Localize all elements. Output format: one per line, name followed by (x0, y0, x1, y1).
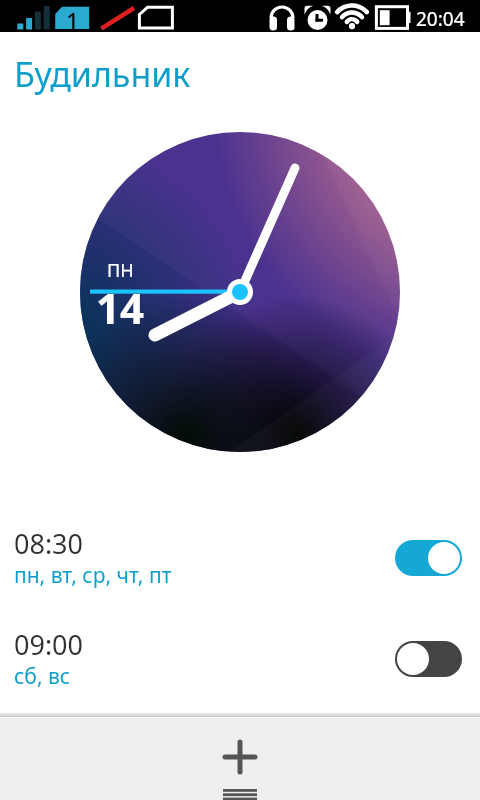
staticText: 1 (66, 5, 80, 36)
staticText: 08:30 (14, 525, 84, 562)
button[interactable]: 08:30 (0, 515, 480, 601)
staticText: 20:04 (416, 6, 465, 32)
staticText: 14 (96, 279, 145, 336)
staticText: 09:00 (14, 626, 84, 663)
staticText: сб, вс (14, 662, 71, 691)
staticText: ПН (107, 258, 134, 283)
button[interactable]: 09:00 (0, 616, 480, 702)
staticText: пн, вт, ср, чт, пт (14, 561, 172, 590)
button[interactable]: Alarm disabled (395, 641, 462, 677)
button[interactable]: Add alarm (209, 726, 271, 788)
button[interactable]: Alarm enabled (395, 540, 462, 576)
button[interactable]: Menu (214, 788, 266, 800)
staticText: Будильник (14, 51, 191, 97)
